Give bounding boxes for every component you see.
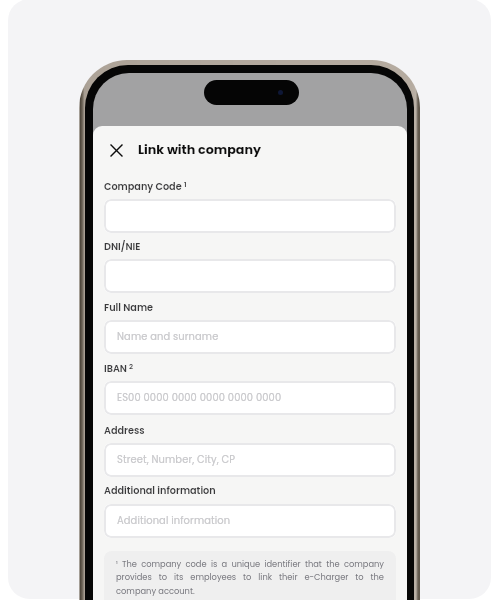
button[interactable] xyxy=(104,199,396,233)
staticText: Name and surname xyxy=(117,330,219,344)
staticText: Company Code xyxy=(104,180,182,194)
staticText: Link with company xyxy=(138,141,261,159)
button[interactable]: ES00 0000 0000 0000 0000 0000 xyxy=(104,381,396,415)
staticText: DNI/NIE xyxy=(104,240,141,254)
button[interactable]: Close xyxy=(103,137,129,163)
staticText: 1 xyxy=(184,180,187,190)
staticText: Additional information xyxy=(104,484,216,498)
staticText: ¹ The company code is a unique identifie… xyxy=(116,558,384,597)
staticText: IBAN xyxy=(104,362,127,376)
staticText: Full Name xyxy=(104,301,154,315)
button[interactable]: Street, Number, City, CP xyxy=(104,443,396,477)
button[interactable]: Name and surname xyxy=(104,320,396,354)
staticText: Street, Number, City, CP xyxy=(117,453,236,467)
staticText: Address xyxy=(104,424,145,438)
staticText: Additional information xyxy=(117,514,231,528)
button[interactable]: Additional information xyxy=(104,504,396,538)
button[interactable] xyxy=(104,259,396,293)
staticText: 2 xyxy=(129,362,134,372)
staticText: ES00 0000 0000 0000 0000 0000 xyxy=(117,391,282,405)
